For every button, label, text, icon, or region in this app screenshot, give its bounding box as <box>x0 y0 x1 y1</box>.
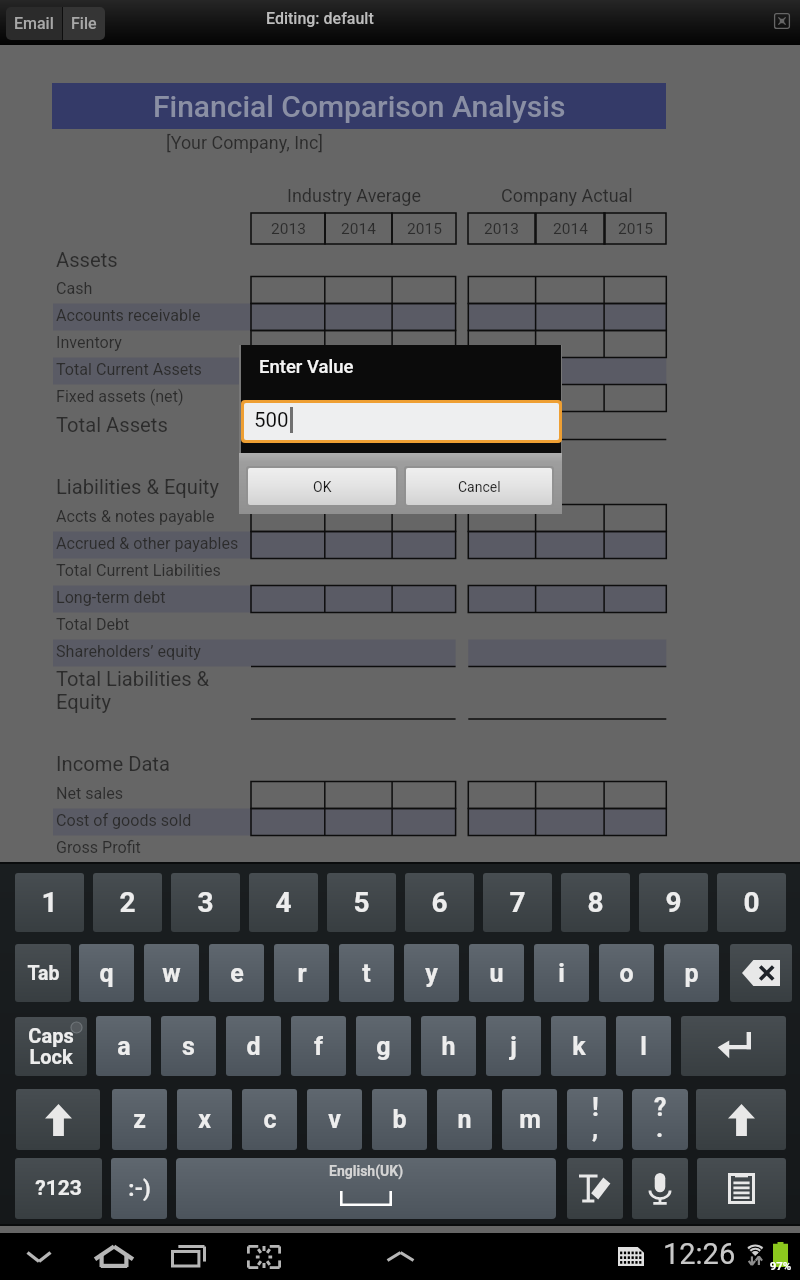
staticText: 2013 <box>271 220 306 238</box>
staticText: Total Assets <box>56 413 168 437</box>
staticText: Total Current Assets <box>56 360 202 379</box>
staticText: y <box>425 959 438 988</box>
button[interactable]: o <box>599 944 654 1002</box>
staticText: r <box>297 959 307 988</box>
button[interactable]: v <box>307 1089 362 1150</box>
button[interactable]: h <box>421 1016 476 1076</box>
button[interactable]: j <box>486 1016 541 1076</box>
button[interactable]: Cancel <box>406 468 552 505</box>
button[interactable]: r <box>274 944 329 1002</box>
button[interactable]: File <box>63 7 105 40</box>
button[interactable]: c <box>242 1089 297 1150</box>
button[interactable]: Space <box>176 1158 556 1219</box>
button[interactable]: Recents <box>163 1233 213 1280</box>
button[interactable]: Screenshot <box>239 1233 289 1280</box>
button[interactable]: m <box>502 1089 557 1150</box>
staticText: 97% <box>765 1259 796 1272</box>
staticText: 2015 <box>618 220 653 238</box>
button[interactable]: Shift <box>16 1089 100 1150</box>
staticText: u <box>489 959 504 988</box>
staticText: Email <box>14 14 54 33</box>
staticText: s <box>182 1032 195 1061</box>
button[interactable]: k <box>551 1016 606 1076</box>
button[interactable]: Caps Lock <box>15 1017 87 1076</box>
button[interactable]: q <box>79 944 134 1002</box>
button[interactable]: 4 <box>249 873 318 932</box>
staticText: l <box>640 1032 647 1061</box>
button[interactable]: Voice input <box>632 1158 688 1219</box>
button[interactable]: OK <box>248 468 396 505</box>
button[interactable]: Clipboard <box>697 1158 786 1219</box>
button[interactable]: Home <box>89 1233 139 1280</box>
staticText: 2013 <box>484 220 519 238</box>
staticText: [Your Company, Inc] <box>166 132 324 153</box>
button[interactable]: y <box>404 944 459 1002</box>
staticText: m <box>519 1105 541 1134</box>
staticText: 2 <box>119 886 136 919</box>
button[interactable]: Tab <box>15 944 71 1002</box>
button[interactable]: b <box>372 1089 427 1150</box>
button[interactable]: f <box>291 1016 346 1076</box>
button[interactable]: Enter <box>681 1016 786 1076</box>
staticText: 0 <box>743 886 760 919</box>
button[interactable]: ? <box>632 1089 688 1150</box>
staticText: ! <box>592 1093 599 1122</box>
button[interactable]: ! <box>567 1089 623 1150</box>
staticText: n <box>457 1105 472 1134</box>
button[interactable]: Keyboard <box>616 1244 646 1268</box>
staticText: x <box>198 1105 211 1134</box>
button[interactable]: 3 <box>171 873 240 932</box>
button[interactable]: Email <box>6 7 62 40</box>
staticText: 3 <box>197 886 214 919</box>
button[interactable]: p <box>664 944 719 1002</box>
staticText: d <box>246 1032 261 1061</box>
button[interactable]: ?123 <box>15 1158 102 1219</box>
button[interactable]: 6 <box>405 873 474 932</box>
staticText: Inventory <box>56 333 122 352</box>
button[interactable]: 0 <box>717 873 786 932</box>
button[interactable]: Financial Comparison Analysis <box>52 83 666 129</box>
button[interactable]: Expand <box>375 1233 425 1280</box>
staticText: Total Debt <box>56 615 130 634</box>
button[interactable]: u <box>469 944 524 1002</box>
staticText: Liabilities & Equity <box>56 475 219 499</box>
button[interactable]: Handwriting <box>567 1158 623 1219</box>
button[interactable]: s <box>161 1016 216 1076</box>
button[interactable]: 5 <box>327 873 396 932</box>
button[interactable]: Backspace <box>730 944 792 1002</box>
button[interactable]: 1 <box>15 873 84 932</box>
staticText: Accounts receivable <box>56 306 201 325</box>
button[interactable]: d <box>226 1016 281 1076</box>
staticText: b <box>392 1105 407 1134</box>
staticText: a <box>117 1032 131 1061</box>
button[interactable]: a <box>96 1016 151 1076</box>
button[interactable]: w <box>144 944 199 1002</box>
button[interactable]: z <box>112 1089 167 1150</box>
button[interactable]: 8 <box>561 873 630 932</box>
button[interactable]: Fullscreen <box>766 5 798 37</box>
button[interactable]: t <box>339 944 394 1002</box>
staticText: Tab <box>27 962 60 985</box>
button[interactable]: :-) <box>111 1158 167 1219</box>
button[interactable]: 2 <box>93 873 162 932</box>
button[interactable]: x <box>177 1089 232 1150</box>
staticText: 2015 <box>407 220 442 238</box>
staticText: w <box>162 959 181 988</box>
button[interactable]: e <box>209 944 264 1002</box>
staticText: 6 <box>431 886 448 919</box>
button[interactable]: 9 <box>639 873 708 932</box>
button[interactable]: 500 <box>244 403 559 440</box>
staticText: :-) <box>128 1176 151 1202</box>
staticText: Industry Average <box>287 185 421 206</box>
button[interactable]: l <box>616 1016 671 1076</box>
button[interactable]: g <box>356 1016 411 1076</box>
staticText: Company Actual <box>501 185 633 206</box>
button[interactable]: i <box>534 944 589 1002</box>
button[interactable]: Shift <box>696 1089 786 1150</box>
staticText: q <box>99 959 114 988</box>
button[interactable]: Hide keyboard <box>14 1233 64 1280</box>
staticText: 9 <box>665 886 682 919</box>
staticText: j <box>510 1032 517 1061</box>
button[interactable]: 7 <box>483 873 552 932</box>
button[interactable]: n <box>437 1089 492 1150</box>
